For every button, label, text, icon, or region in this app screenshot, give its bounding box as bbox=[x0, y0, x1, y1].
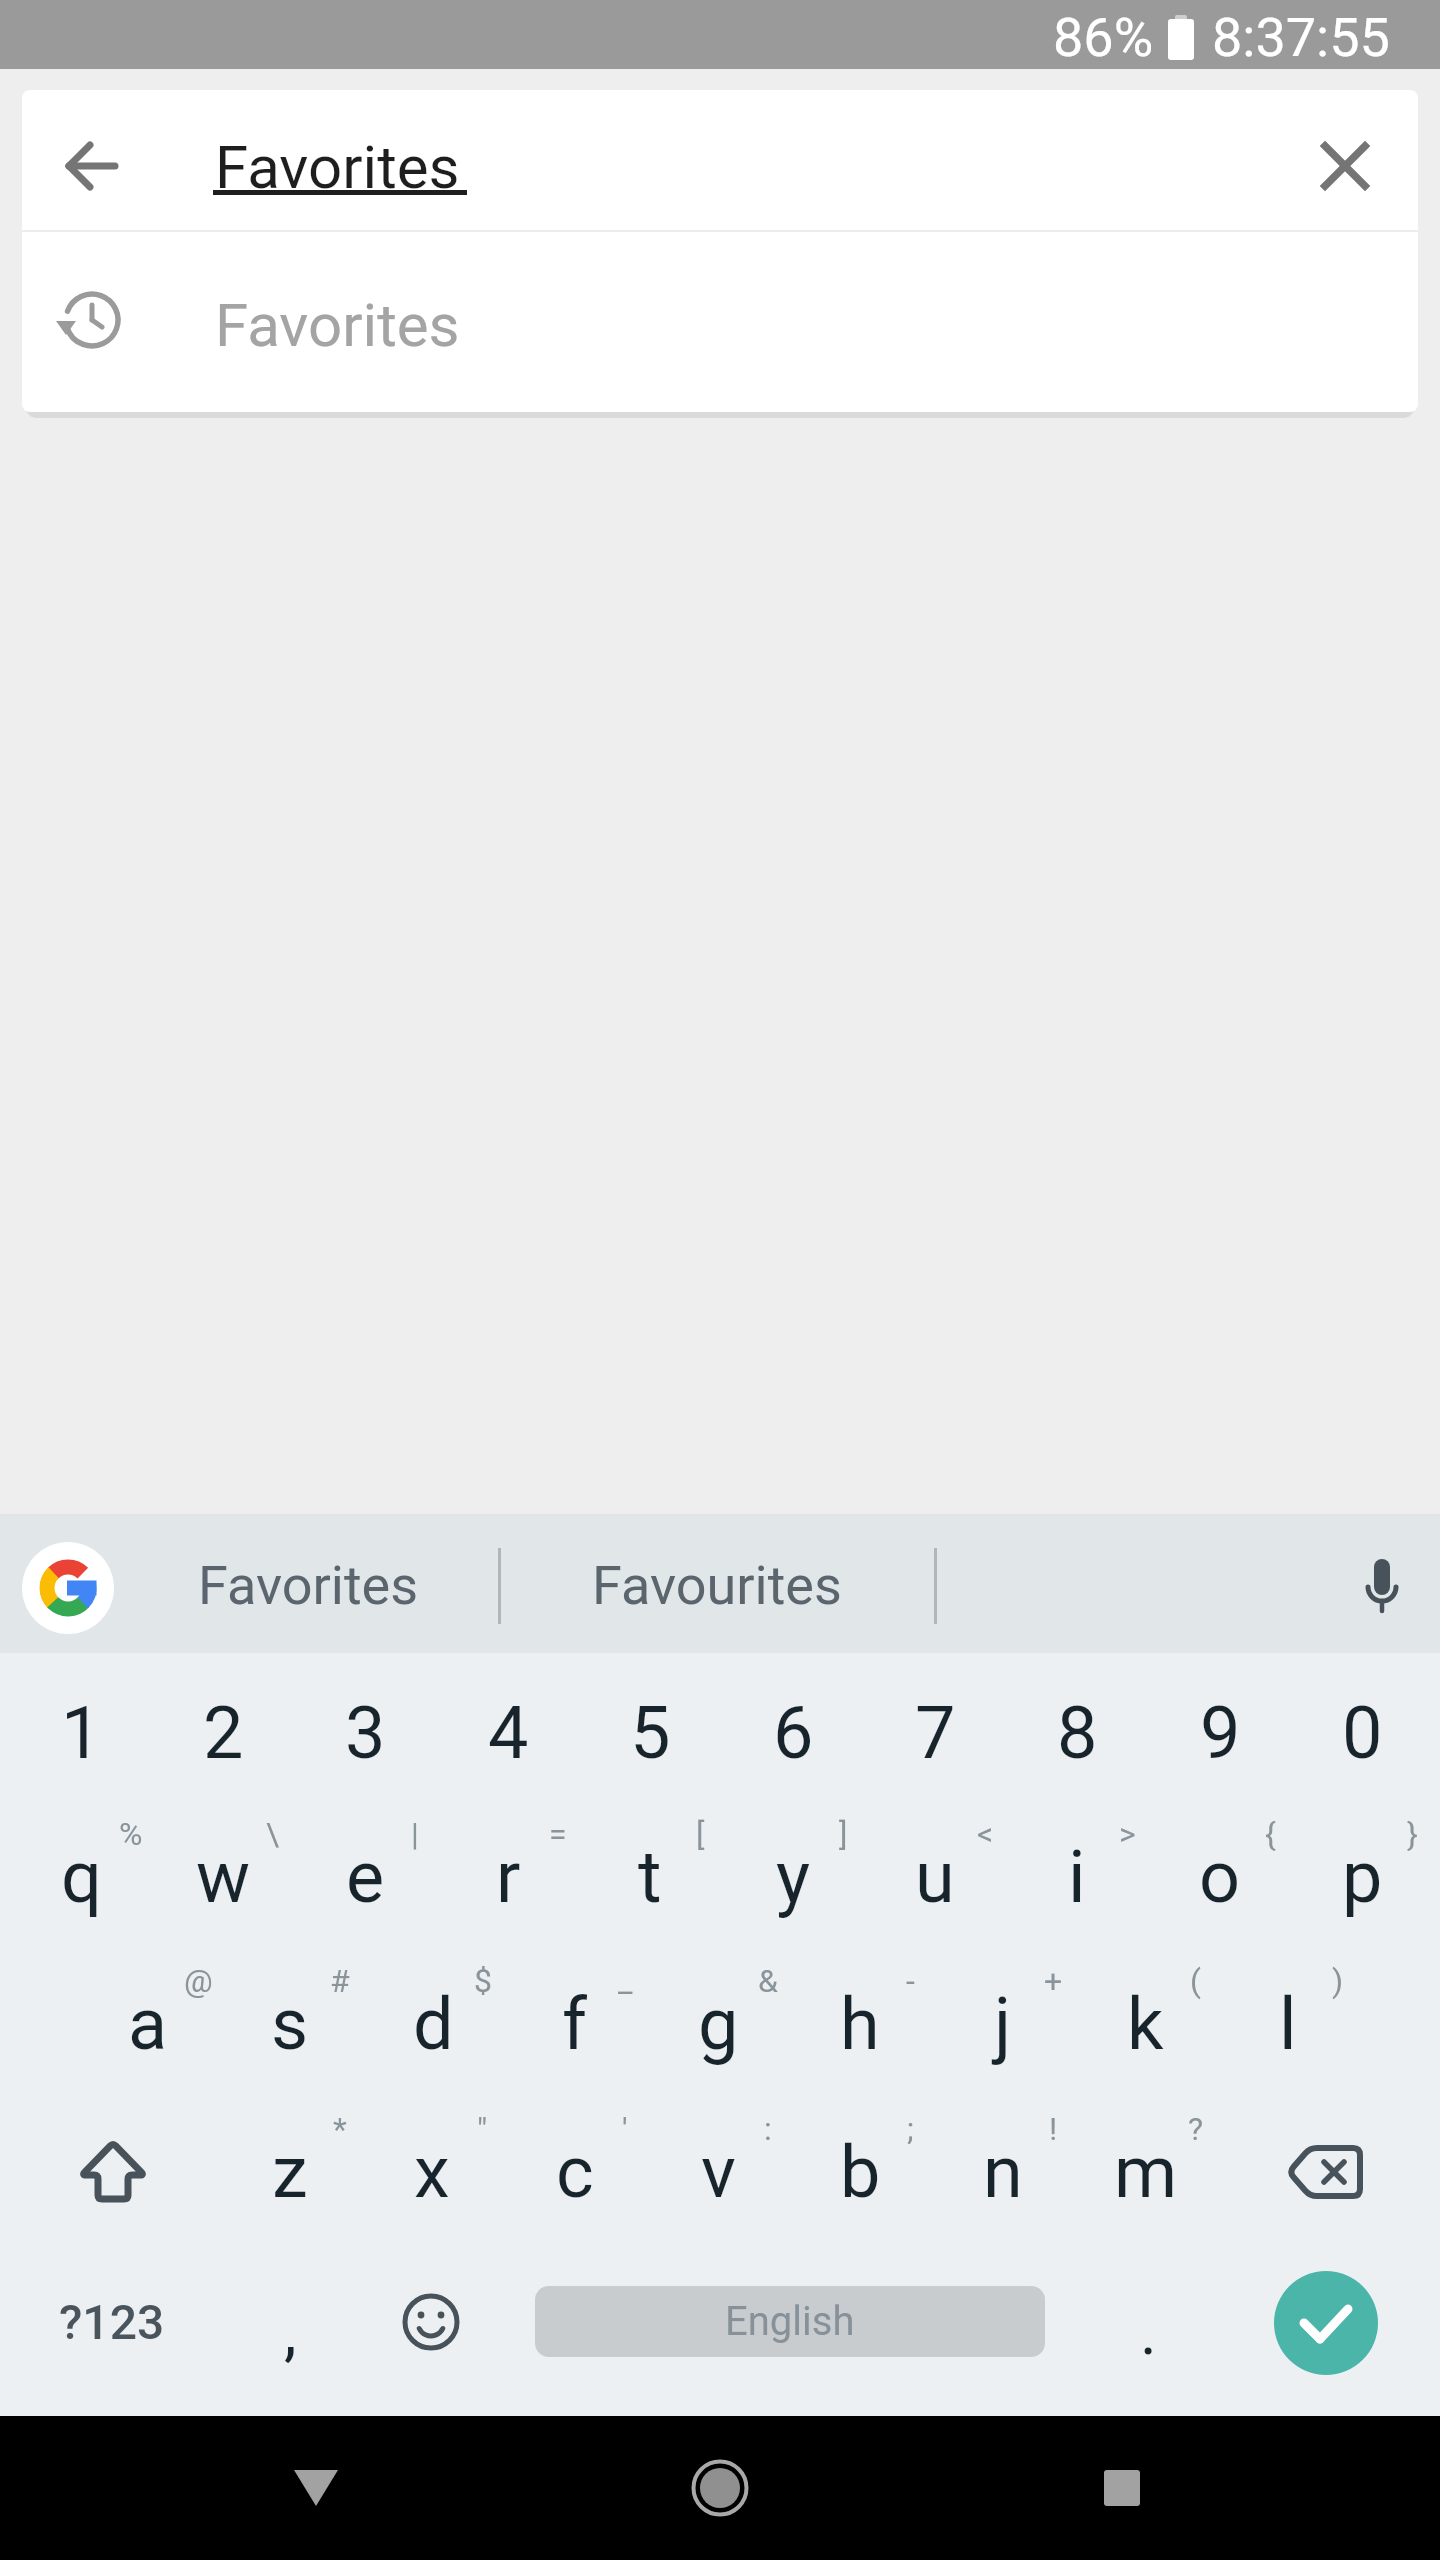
staticText: . bbox=[1140, 2295, 1157, 2370]
staticText: ; bbox=[907, 2110, 914, 2148]
button[interactable]: ?123 bbox=[22, 2249, 202, 2395]
staticText: Favorites bbox=[215, 290, 460, 360]
staticText: ! bbox=[1049, 2110, 1058, 2148]
button[interactable]: v bbox=[647, 2099, 789, 2245]
button[interactable] bbox=[1042, 2428, 1202, 2548]
staticText: j bbox=[994, 1982, 1012, 2066]
staticText: h bbox=[840, 1982, 880, 2066]
staticText: $ bbox=[474, 1962, 492, 2000]
button[interactable]: 8 bbox=[1006, 1660, 1148, 1806]
button[interactable]: 9 bbox=[1149, 1660, 1291, 1806]
button[interactable] bbox=[366, 2249, 496, 2395]
staticText: i bbox=[1068, 1835, 1086, 1919]
staticText: ] bbox=[839, 1815, 848, 1853]
button[interactable]: 0 bbox=[1291, 1660, 1433, 1806]
staticText: English bbox=[725, 2298, 855, 2345]
button[interactable]: Favorites bbox=[138, 1530, 478, 1640]
staticText: 8 bbox=[1057, 1691, 1098, 1775]
staticText: d bbox=[413, 1982, 454, 2066]
staticText: 5 bbox=[630, 1691, 671, 1775]
button[interactable]: t bbox=[579, 1804, 721, 1950]
staticText: x bbox=[414, 2130, 450, 2214]
staticText: f bbox=[562, 1982, 588, 2066]
button[interactable]: n bbox=[932, 2099, 1074, 2245]
staticText: s bbox=[271, 1982, 309, 2066]
button[interactable]: , bbox=[230, 2259, 350, 2405]
button[interactable]: h bbox=[789, 1951, 931, 2097]
button[interactable]: o bbox=[1149, 1804, 1291, 1950]
button[interactable] bbox=[22, 96, 162, 236]
staticText: { bbox=[1265, 1815, 1276, 1853]
button[interactable]: f bbox=[504, 1951, 646, 2097]
button[interactable] bbox=[1327, 1531, 1437, 1641]
staticText: Favorites bbox=[215, 132, 460, 202]
staticText: | bbox=[411, 1815, 419, 1853]
staticText: " bbox=[477, 2110, 488, 2148]
button[interactable]: English bbox=[535, 2286, 1045, 2357]
button[interactable]: 7 bbox=[864, 1660, 1006, 1806]
button[interactable] bbox=[236, 2428, 396, 2548]
staticText: 86% bbox=[1053, 6, 1154, 69]
button[interactable]: b bbox=[789, 2099, 931, 2245]
staticText: & bbox=[758, 1962, 778, 2000]
staticText: = bbox=[549, 1815, 567, 1853]
button[interactable]: k bbox=[1074, 1951, 1216, 2097]
button[interactable]: s bbox=[219, 1951, 361, 2097]
staticText: v bbox=[701, 2130, 736, 2214]
staticText: a bbox=[128, 1982, 168, 2066]
staticText: 8:37:55 bbox=[1212, 6, 1390, 69]
button[interactable]: r bbox=[437, 1804, 579, 1950]
button[interactable]: Favourites bbox=[537, 1530, 897, 1640]
button[interactable]: y bbox=[722, 1804, 864, 1950]
staticText: 6 bbox=[773, 1691, 814, 1775]
button[interactable] bbox=[640, 2428, 800, 2548]
staticText: b bbox=[840, 2130, 881, 2214]
button[interactable]: d bbox=[362, 1951, 504, 2097]
button[interactable] bbox=[22, 1542, 114, 1634]
button[interactable]: 4 bbox=[437, 1660, 579, 1806]
button[interactable]: m bbox=[1075, 2099, 1217, 2245]
button[interactable]: c bbox=[504, 2099, 646, 2245]
staticText: , bbox=[284, 2295, 297, 2370]
button[interactable]: 3 bbox=[294, 1660, 436, 1806]
button[interactable] bbox=[23, 2099, 203, 2245]
button[interactable]: e bbox=[294, 1804, 436, 1950]
button[interactable] bbox=[1275, 96, 1415, 236]
staticText: t bbox=[638, 1835, 662, 1919]
staticText: + bbox=[1044, 1962, 1063, 2000]
button[interactable]: q bbox=[10, 1804, 152, 1950]
staticText: l bbox=[1279, 1982, 1297, 2066]
button[interactable]: z bbox=[219, 2099, 361, 2245]
button[interactable]: 5 bbox=[579, 1660, 721, 1806]
button[interactable] bbox=[1235, 2099, 1415, 2245]
staticText: ? bbox=[1188, 2110, 1204, 2148]
button[interactable]: . bbox=[1088, 2259, 1208, 2405]
button[interactable]: u bbox=[864, 1804, 1006, 1950]
staticText: u bbox=[915, 1835, 955, 1919]
staticText: [ bbox=[696, 1815, 705, 1853]
staticText: Favorites bbox=[198, 1554, 419, 1617]
button[interactable]: l bbox=[1217, 1951, 1359, 2097]
staticText: ' bbox=[622, 2110, 628, 2148]
button[interactable]: p bbox=[1291, 1804, 1433, 1950]
button[interactable]: g bbox=[647, 1951, 789, 2097]
button[interactable]: 6 bbox=[722, 1660, 864, 1806]
button[interactable] bbox=[1271, 2268, 1381, 2378]
button[interactable]: a bbox=[77, 1951, 219, 2097]
button[interactable]: Favorites bbox=[22, 232, 1418, 412]
button[interactable]: 2 bbox=[152, 1660, 294, 1806]
staticText: > bbox=[1119, 1815, 1136, 1853]
staticText: w bbox=[196, 1835, 251, 1919]
button[interactable]: i bbox=[1006, 1804, 1148, 1950]
button[interactable]: w bbox=[152, 1804, 294, 1950]
staticText: 1 bbox=[61, 1691, 102, 1775]
staticText: m bbox=[1114, 2130, 1178, 2214]
button[interactable]: 1 bbox=[10, 1660, 152, 1806]
staticText: r bbox=[496, 1835, 521, 1919]
staticText: q bbox=[61, 1835, 102, 1919]
staticText: < bbox=[977, 1815, 994, 1853]
staticText: } bbox=[1407, 1815, 1418, 1853]
button[interactable]: j bbox=[932, 1951, 1074, 2097]
button[interactable]: x bbox=[361, 2099, 503, 2245]
staticText: e bbox=[346, 1835, 385, 1919]
